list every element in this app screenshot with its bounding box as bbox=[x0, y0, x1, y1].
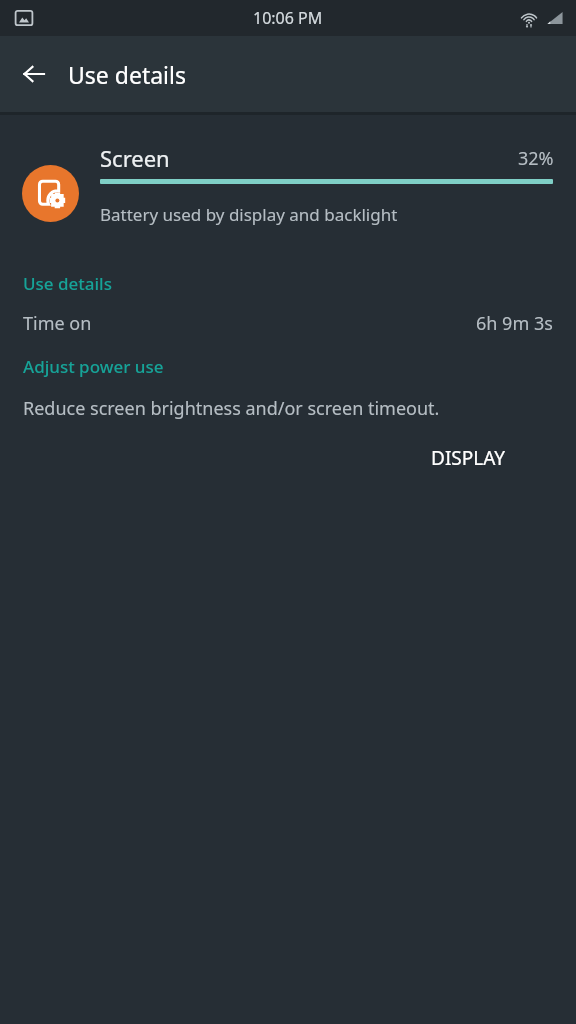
staticText: Adjust power use bbox=[23, 355, 164, 378]
staticText: Use details bbox=[23, 272, 112, 295]
staticText: Reduce screen brightness and/or screen t… bbox=[23, 396, 440, 421]
staticText: Screen bbox=[100, 143, 170, 173]
staticText: Time on bbox=[23, 311, 92, 336]
staticText: 10:06 PM bbox=[253, 7, 323, 29]
button[interactable]: Back bbox=[10, 50, 58, 98]
button[interactable]: Time on bbox=[0, 295, 576, 351]
staticText: Battery used by display and backlight bbox=[100, 203, 398, 226]
button[interactable]: DISPLAY bbox=[423, 437, 513, 479]
staticText: 32% bbox=[518, 146, 554, 171]
staticText: DISPLAY bbox=[431, 445, 505, 471]
staticText: Use details bbox=[68, 59, 186, 90]
staticText: 6h 9m 3s bbox=[476, 311, 553, 336]
